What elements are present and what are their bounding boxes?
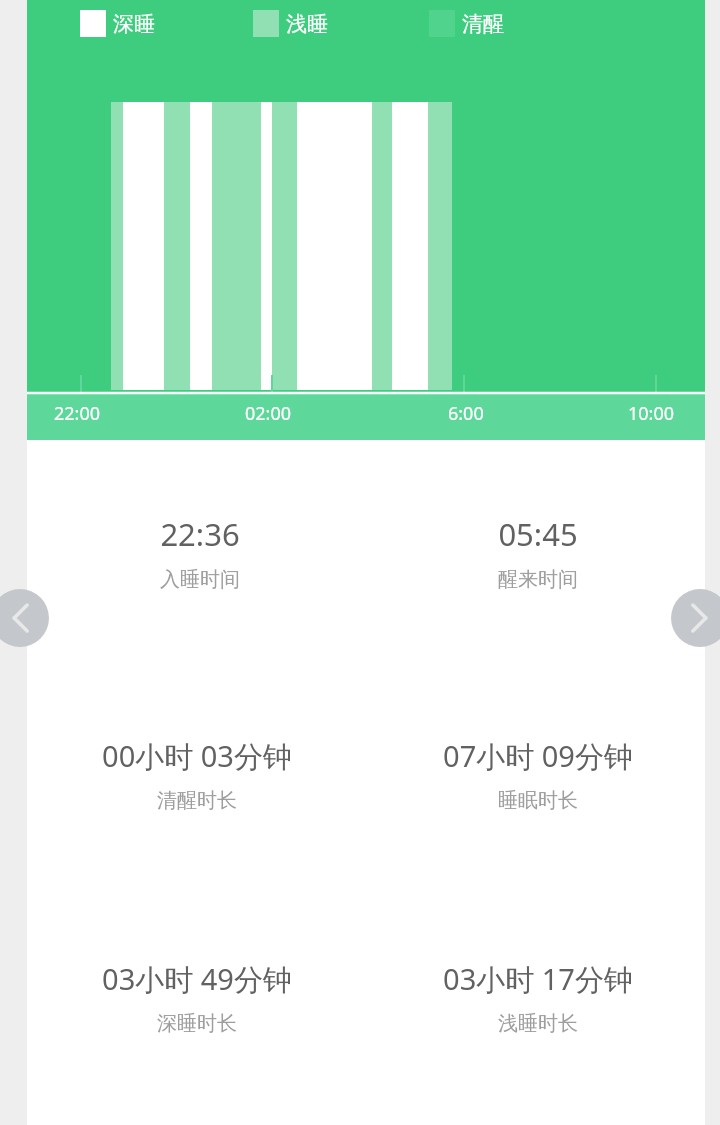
staticText: 清醒 [462, 11, 504, 37]
button[interactable]: 03小时 17分钟 [368, 959, 708, 1036]
staticText: 深睡 [113, 11, 155, 37]
staticText: 6:00 [448, 401, 484, 426]
staticText: 醒来时间 [498, 567, 578, 592]
button[interactable]: 深睡 [80, 10, 155, 37]
button[interactable]: 05:45 [368, 513, 708, 592]
button[interactable]: 22:36 [30, 513, 370, 592]
button[interactable]: 07小时 09分钟 [368, 736, 708, 813]
button[interactable]: 00小时 03分钟 [27, 736, 367, 813]
button[interactable]: Previous day [0, 589, 49, 647]
button[interactable]: Next day [671, 589, 720, 647]
staticText: 05:45 [498, 513, 578, 555]
staticText: 07小时 09分钟 [443, 736, 633, 776]
staticText: 浅睡时长 [498, 1011, 578, 1036]
staticText: 03小时 49分钟 [102, 959, 292, 999]
staticText: 22:36 [160, 513, 240, 555]
staticText: 22:00 [54, 401, 101, 426]
staticText: 入睡时间 [160, 567, 240, 592]
staticText: 10:00 [628, 401, 675, 426]
button[interactable]: 清醒 [429, 10, 504, 37]
button[interactable]: 03小时 49分钟 [27, 959, 367, 1036]
staticText: 清醒时长 [157, 788, 237, 813]
staticText: 00小时 03分钟 [102, 736, 292, 776]
staticText: 03小时 17分钟 [443, 959, 633, 999]
staticText: 深睡时长 [157, 1011, 237, 1036]
staticText: 睡眠时长 [498, 788, 578, 813]
button[interactable]: 浅睡 [253, 10, 328, 37]
staticText: 浅睡 [286, 11, 328, 37]
staticText: 02:00 [245, 401, 292, 426]
